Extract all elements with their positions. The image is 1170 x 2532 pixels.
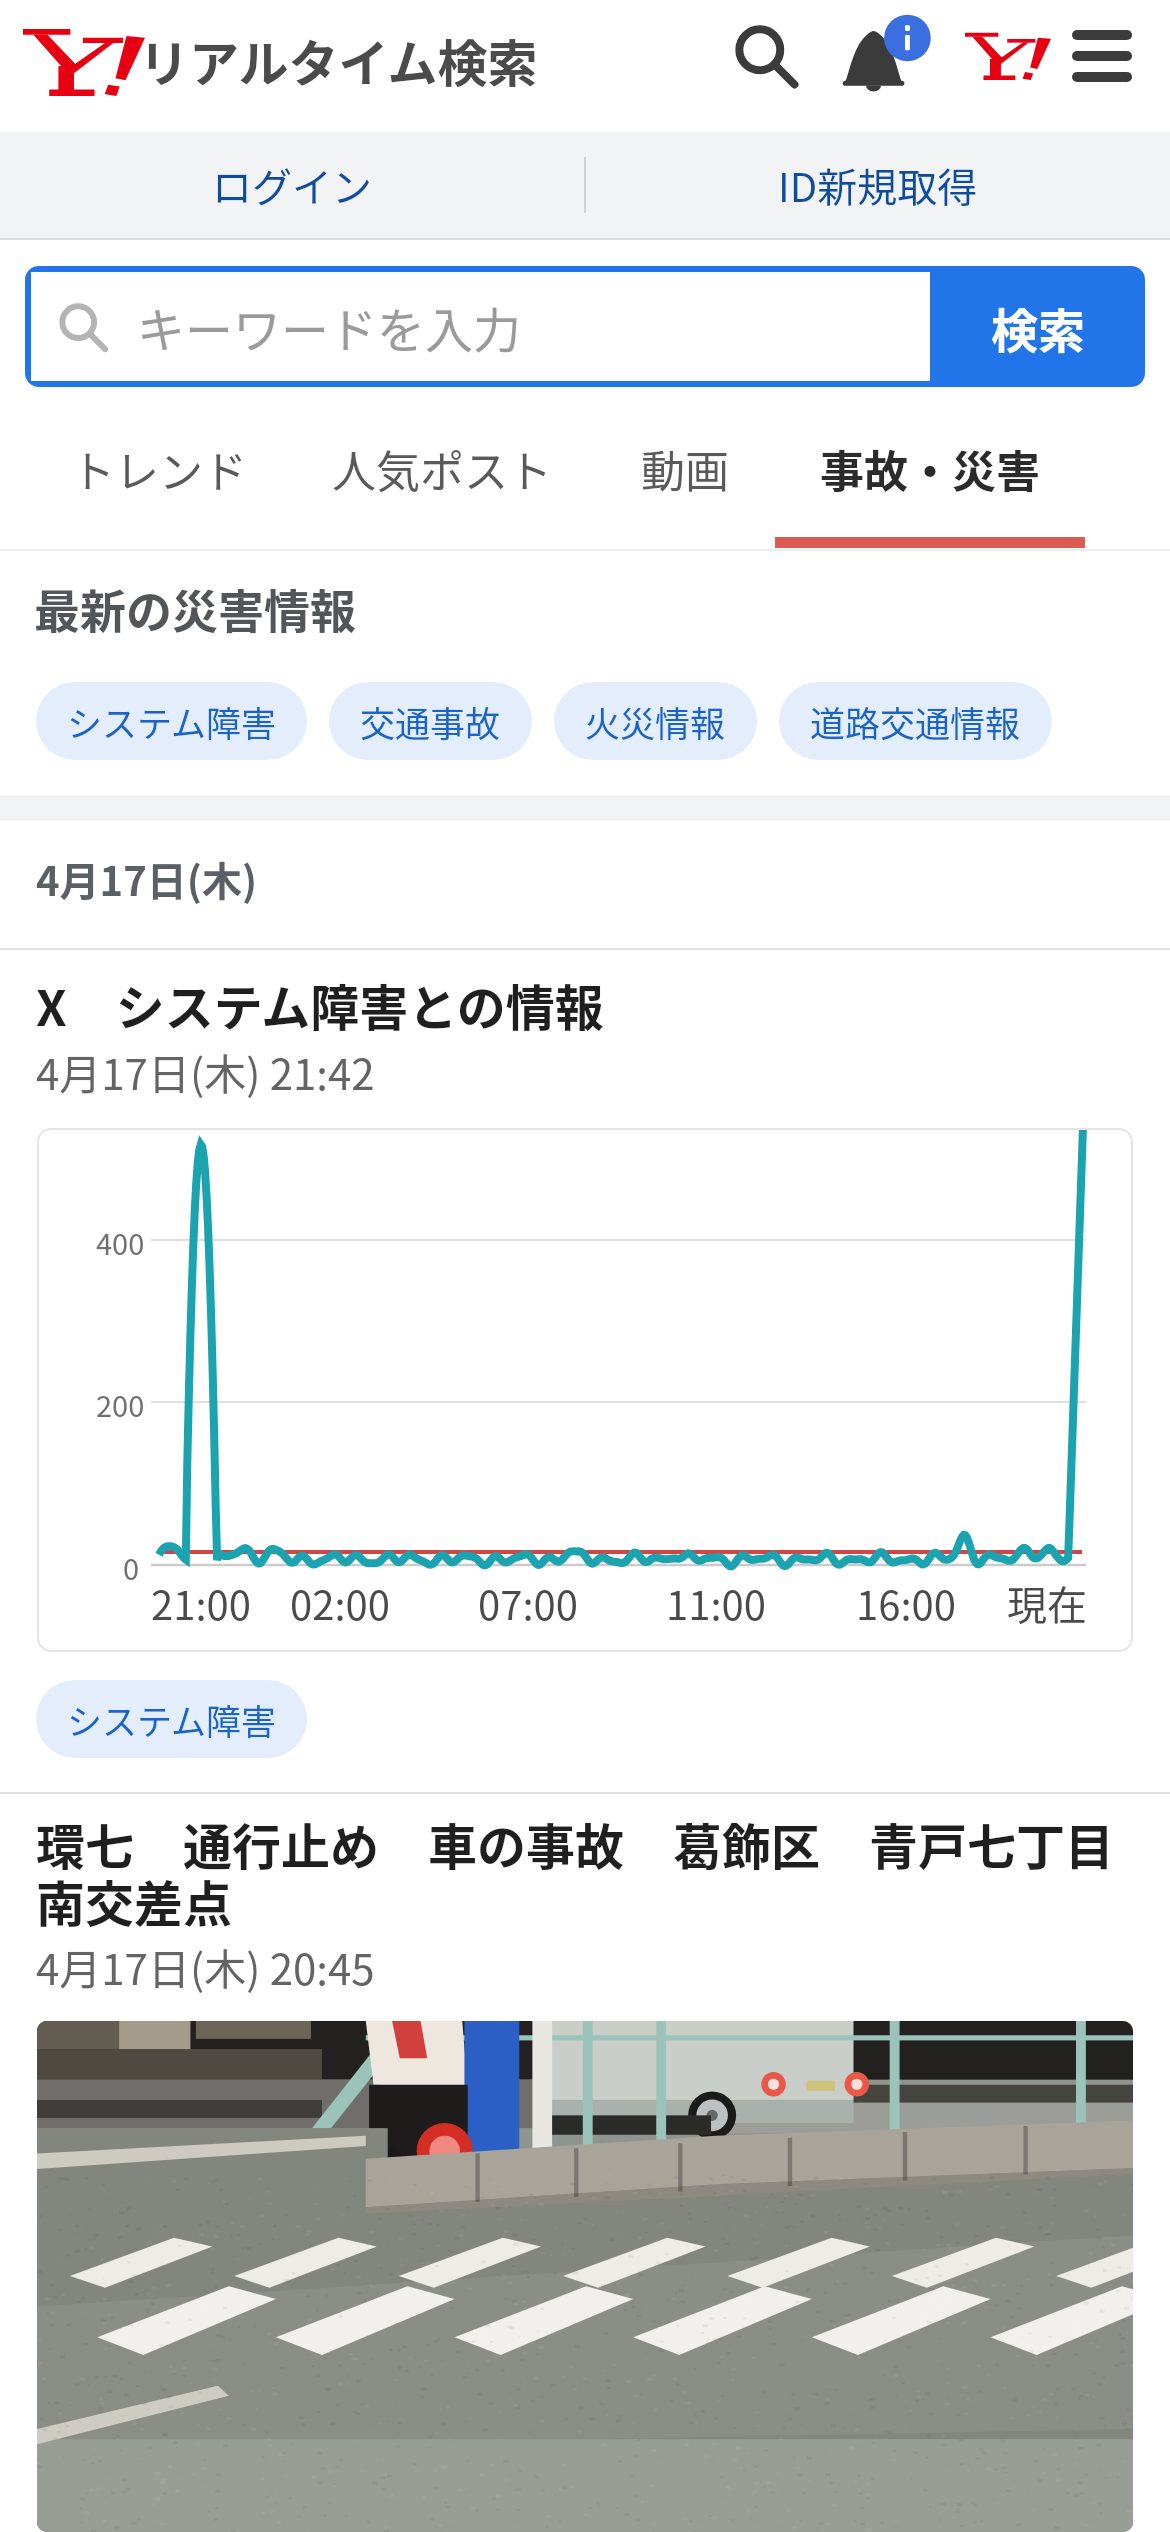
button[interactable]: システム障害: [36, 1680, 307, 1758]
staticText: 4月17日(木) 21:42: [36, 1041, 375, 1102]
staticText: トレンド: [71, 437, 247, 501]
staticText: 200: [96, 1383, 145, 1425]
staticText: 0: [123, 1546, 140, 1588]
staticText: 動画: [641, 437, 729, 501]
staticText: 16:00: [856, 1574, 956, 1632]
staticText: 07:00: [478, 1574, 578, 1632]
button[interactable]: メニュー: [1058, 12, 1146, 100]
button[interactable]: 検索: [722, 12, 810, 100]
button[interactable]: 人気ポスト: [278, 413, 606, 549]
staticText: 事故・災害: [820, 437, 1040, 501]
button[interactable]: 環七 通行止め 車の事故 葛飾区 青戸七丁目南交差点: [0, 1794, 1170, 2532]
staticText: 道路交通情報: [810, 696, 1021, 747]
staticText: ログイン: [212, 156, 372, 214]
button[interactable]: お知らせ: [841, 12, 929, 100]
staticText: 人気ポスト: [332, 437, 552, 501]
button[interactable]: システム障害: [36, 682, 307, 760]
staticText: 21:00: [151, 1574, 251, 1632]
staticText: ID新規取得: [778, 156, 978, 214]
staticText: 4月17日(木) 20:45: [36, 1936, 375, 1997]
button[interactable]: ログイン: [0, 132, 584, 238]
button[interactable]: ID新規取得: [586, 132, 1170, 238]
staticText: システム障害: [67, 1694, 276, 1745]
staticText: 交通事故: [360, 696, 501, 747]
staticText: リアルタイム検索: [139, 24, 538, 96]
staticText: 環七 通行止め 車の事故 葛飾区 青戸七丁目南交差点: [36, 1808, 1150, 1936]
staticText: 4月17日(木): [36, 850, 258, 908]
button[interactable]: 動画: [606, 413, 764, 549]
button[interactable]: トレンド: [40, 413, 278, 549]
staticText: 400: [96, 1221, 145, 1263]
button[interactable]: 火災情報: [554, 682, 757, 760]
button[interactable]: X システム障害との情報: [0, 950, 1170, 1792]
button[interactable]: 交通事故: [329, 682, 532, 760]
staticText: 火災情報: [585, 696, 726, 747]
staticText: 検索: [991, 293, 1085, 361]
button[interactable]: リアルタイム検索: [23, 10, 544, 102]
staticText: システム障害: [67, 696, 276, 747]
button[interactable]: 事故・災害: [764, 413, 1096, 549]
staticText: 11:00: [666, 1574, 766, 1632]
staticText: X システム障害との情報: [36, 969, 604, 1040]
button[interactable]: Yahoo! JAPAN: [964, 12, 1052, 100]
staticText: 現在: [1007, 1574, 1087, 1632]
staticText: キーワードを入力: [137, 292, 522, 362]
button[interactable]: 道路交通情報: [779, 682, 1052, 760]
staticText: 02:00: [290, 1574, 390, 1632]
button[interactable]: 検索: [930, 266, 1145, 387]
button[interactable]: キーワードを入力: [31, 272, 930, 381]
staticText: 最新の災害情報: [34, 575, 356, 642]
